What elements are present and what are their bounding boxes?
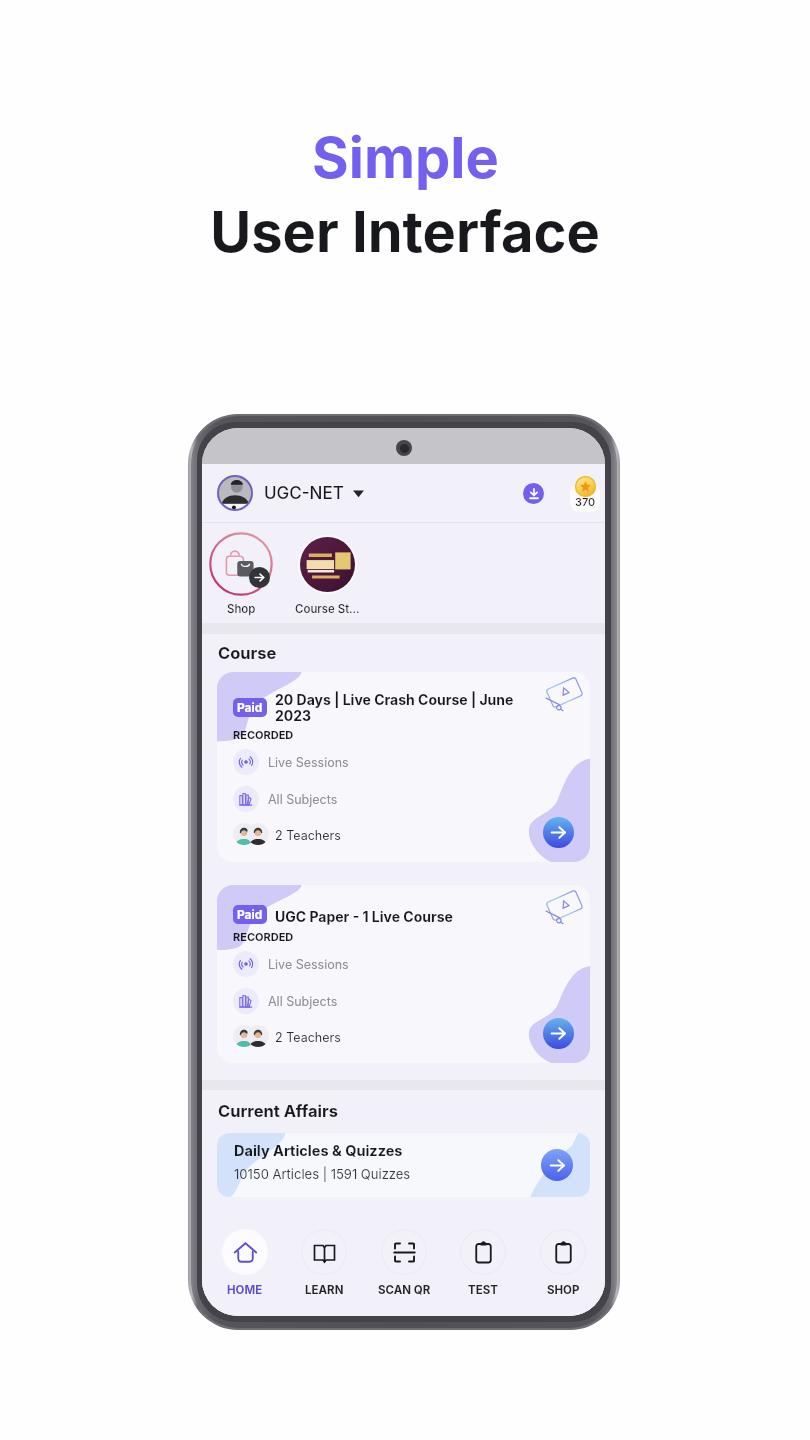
- staticText: 2 Teachers: [275, 1030, 341, 1045]
- button[interactable]: Shop: [209, 532, 273, 596]
- button[interactable]: Paid: [217, 672, 590, 862]
- staticText: Paid: [237, 907, 263, 922]
- staticText: Live Sessions: [268, 755, 349, 770]
- staticText: Simple: [312, 124, 499, 192]
- staticText: TEST: [468, 1283, 498, 1297]
- staticText: Daily Articles & Quizzes: [234, 1142, 403, 1160]
- staticText: Course St...: [295, 602, 359, 616]
- staticText: HOME: [227, 1283, 263, 1297]
- staticText: SCAN QR: [378, 1283, 431, 1297]
- staticText: 370: [575, 495, 596, 508]
- staticText: LEARN: [305, 1283, 344, 1297]
- staticText: User Interface: [210, 198, 600, 266]
- staticText: 10150 Articles | 1591 Quizzes: [234, 1166, 411, 1182]
- staticText: All Subjects: [268, 994, 338, 1009]
- staticText: Course: [218, 643, 277, 663]
- button[interactable]: Open course: [543, 817, 574, 848]
- button[interactable]: Course Story: [295, 532, 359, 596]
- staticText: Live Sessions: [268, 957, 349, 972]
- button[interactable]: Open course: [543, 1018, 574, 1049]
- button[interactable]: Coins 370: [570, 464, 600, 522]
- staticText: UGC Paper - 1 Live Course: [275, 908, 453, 925]
- button[interactable]: Profile: [217, 475, 253, 511]
- button[interactable]: Open current affairs: [541, 1149, 573, 1181]
- button[interactable]: Change exam: [349, 484, 367, 502]
- button[interactable]: Downloads: [523, 483, 544, 504]
- staticText: UGC-NET: [264, 483, 344, 504]
- staticText: Shop: [227, 602, 256, 616]
- staticText: SHOP: [547, 1283, 580, 1297]
- button[interactable]: HOME: [208, 1229, 282, 1297]
- button[interactable]: LEARN: [287, 1229, 361, 1297]
- staticText: Paid: [237, 700, 263, 715]
- button[interactable]: Daily Articles & Quizzes: [217, 1133, 590, 1197]
- staticText: 20 Days | Live Crash Course | June 2023: [275, 691, 525, 724]
- staticText: 2 Teachers: [275, 828, 341, 843]
- staticText: RECORDED: [233, 930, 294, 943]
- button[interactable]: Paid: [217, 885, 590, 1063]
- staticText: RECORDED: [233, 728, 294, 741]
- button[interactable]: SHOP: [526, 1229, 600, 1297]
- button[interactable]: SCAN QR: [367, 1229, 441, 1297]
- staticText: All Subjects: [268, 792, 338, 807]
- staticText: Current Affairs: [218, 1101, 338, 1121]
- button[interactable]: TEST: [446, 1229, 520, 1297]
